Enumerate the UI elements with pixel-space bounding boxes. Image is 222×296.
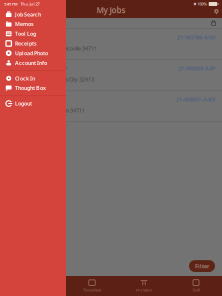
button[interactable]: Golf [170, 276, 222, 296]
staticText: 100% [197, 1, 207, 7]
button[interactable]: Map [211, 7, 222, 17]
staticText: Upload Photo [15, 50, 48, 57]
staticText: Denise Carver [7, 95, 53, 104]
button[interactable]: Calendar [209, 19, 217, 27]
staticText: Thu Jul 27 [20, 1, 39, 7]
staticText: Filter [195, 262, 209, 270]
button[interactable]: Upload Photo [0, 48, 66, 58]
button[interactable]: Receipts [0, 39, 66, 48]
staticText: 815 Pinehurst Rd, Dunedin 34711 [7, 107, 85, 114]
staticText: Memos [15, 20, 34, 28]
staticText: Job Search [15, 11, 41, 18]
staticText: Logout [15, 100, 32, 107]
button[interactable]: Thought Box [0, 83, 66, 93]
button[interactable]: Filter [189, 260, 215, 272]
button[interactable]: Clock In [0, 73, 66, 83]
staticText: Receipts [15, 40, 37, 47]
staticText: 1120 Thomas Dr, Panama City 32413 [7, 76, 94, 83]
staticText: Pro Store [136, 287, 152, 293]
staticText: 21-W0800-AXP [178, 65, 215, 72]
staticText: Clock In [15, 75, 35, 82]
staticText: 9:49 PM [4, 1, 18, 7]
staticText: Tool Log [15, 30, 36, 37]
staticText: Golf [192, 287, 199, 293]
staticText: 3409 Woodmere Dr, Brooksville 34711 [7, 45, 97, 52]
button[interactable]: Memos [0, 19, 66, 29]
staticText: Thought Box [15, 84, 46, 92]
button[interactable]: Job Search [0, 9, 66, 19]
button[interactable]: Timesheet [66, 276, 118, 296]
staticText: Gregory Halloway [7, 64, 67, 73]
button[interactable]: Gregory Halloway [0, 60, 222, 91]
button[interactable]: Pro Store [118, 276, 170, 296]
button[interactable]: Account Info [0, 58, 66, 68]
button[interactable]: Amanda Reynolds [0, 29, 222, 60]
button[interactable]: Denise Carver [0, 91, 222, 122]
staticText: 21-W0786-ANX [177, 34, 215, 41]
staticText: 21-W0801-ANN [176, 96, 215, 103]
button[interactable]: Tool Log [0, 29, 66, 39]
staticText: Amanda Reynolds [7, 33, 64, 42]
button[interactable]: Logout [0, 99, 66, 108]
staticText: My Jobs [96, 5, 125, 15]
staticText: Timesheet [83, 287, 101, 293]
staticText: Account Info [15, 59, 47, 66]
